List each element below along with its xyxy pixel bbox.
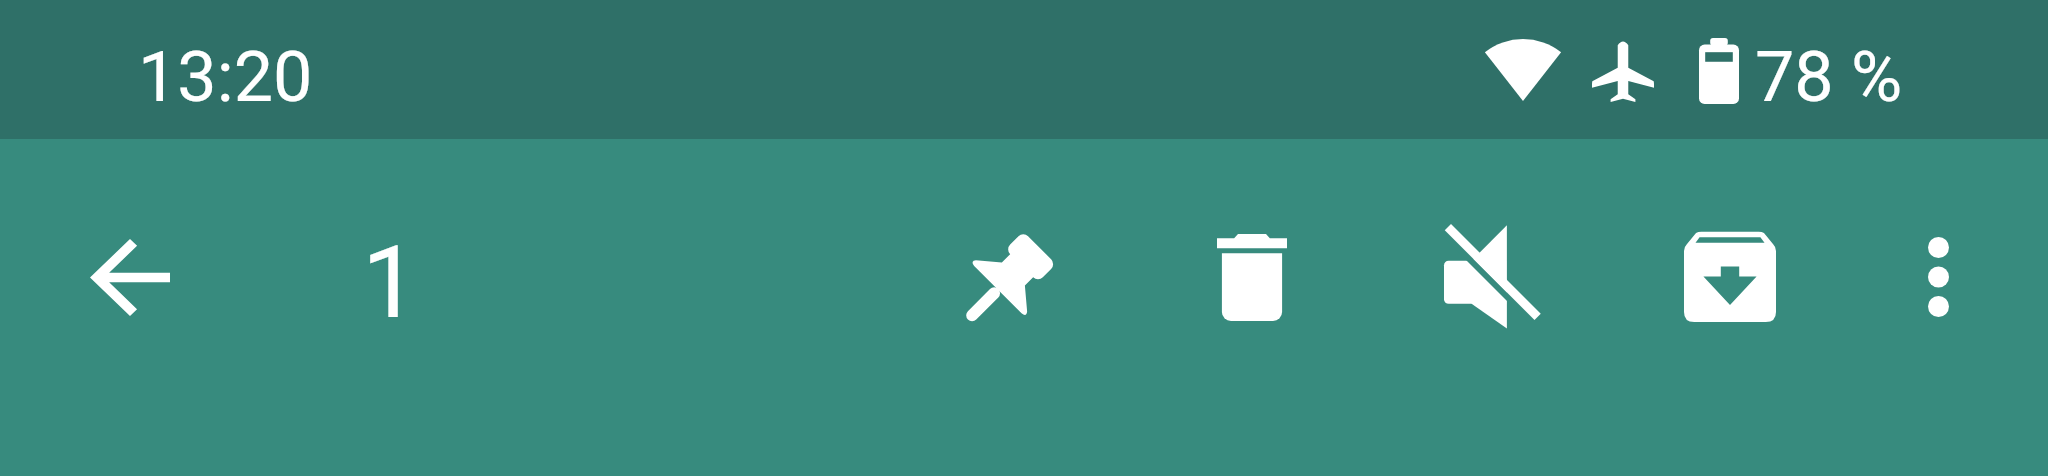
button[interactable]: Back <box>42 189 218 365</box>
staticText: 13:20 <box>138 36 313 118</box>
button[interactable]: More options <box>1850 189 2026 365</box>
button[interactable]: Delete <box>1164 189 1340 365</box>
staticText: 1 <box>362 224 419 341</box>
button[interactable]: Pin <box>918 189 1094 365</box>
button[interactable]: Archive <box>1642 189 1818 365</box>
staticText: 78 % <box>1755 36 1903 118</box>
button[interactable]: Mute <box>1403 189 1579 365</box>
